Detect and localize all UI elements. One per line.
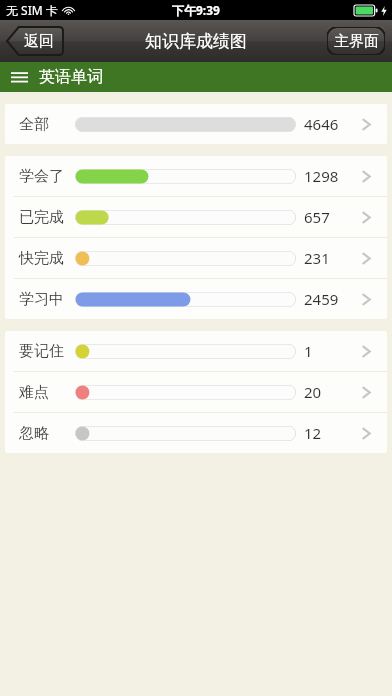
staticText: 学会了 — [19, 167, 64, 186]
staticText: 快完成 — [19, 249, 64, 268]
button[interactable]: Menu — [0, 62, 392, 92]
staticText: 要记住 — [19, 342, 64, 361]
staticText: 知识库成绩图 — [145, 31, 247, 52]
button[interactable]: 主界面 — [327, 27, 385, 55]
staticText: 1 — [304, 341, 313, 361]
staticText: 20 — [304, 382, 322, 402]
button[interactable]: 全部 — [5, 104, 387, 144]
button[interactable]: 学习中 — [5, 279, 387, 319]
staticText: 657 — [304, 207, 330, 227]
button[interactable]: 学会了 — [5, 156, 387, 196]
staticText: 全部 — [19, 115, 49, 134]
other: Menu — [11, 69, 28, 86]
button[interactable]: 难点 — [5, 372, 387, 412]
staticText: 4646 — [304, 114, 339, 134]
staticText: 忽略 — [19, 424, 49, 443]
staticText: 12 — [304, 423, 322, 443]
staticText: 无 SIM 卡 — [6, 2, 58, 18]
button[interactable]: 要记住 — [5, 331, 387, 371]
staticText: 已完成 — [19, 208, 64, 227]
button[interactable]: 已完成 — [5, 197, 387, 237]
staticText: 学习中 — [19, 290, 64, 309]
staticText: 主界面 — [334, 32, 379, 51]
staticText: 1298 — [304, 166, 339, 186]
staticText: 下午9:39 — [172, 2, 220, 18]
button[interactable]: 快完成 — [5, 238, 387, 278]
staticText: 返回 — [24, 32, 54, 51]
button[interactable]: 忽略 — [5, 413, 387, 453]
staticText: 2459 — [304, 289, 339, 309]
staticText: 难点 — [19, 383, 49, 402]
button[interactable]: 返回 — [7, 27, 63, 55]
staticText: 英语单词 — [39, 67, 103, 87]
staticText: 231 — [304, 248, 330, 268]
